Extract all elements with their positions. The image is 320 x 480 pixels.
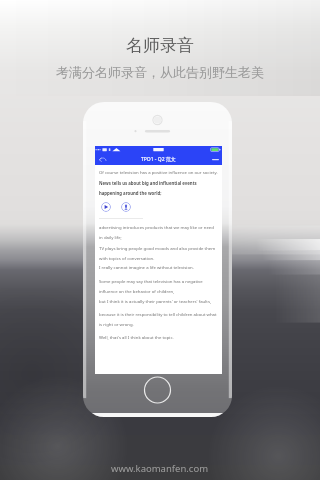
staticText: 名师录音 [126,35,194,56]
button[interactable]: Back [95,153,109,165]
staticText: advertising introduces products that we … [99,224,218,240]
staticText: Of course television has a positive infl… [99,169,218,175]
staticText: TV plays bring people good moods and als… [99,245,218,261]
button[interactable]: More options [209,153,222,165]
staticText: because it is their responsibility to te… [99,311,218,327]
button[interactable]: Play recording [101,202,111,212]
button[interactable]: Record [121,202,131,212]
staticText: News tells us about big and influential … [99,180,218,196]
staticText: Some people may say that television has … [99,278,218,294]
staticText: I really cannot imagine a life without t… [99,264,194,270]
staticText: Well, that's all I think about the topic… [99,334,174,340]
staticText: TPO1 - Q2 范文 [141,156,176,163]
staticText: www.kaomanfen.com [111,462,209,475]
staticText: but I think it is actually their parents… [99,298,212,304]
staticText: 考满分名师录音，从此告别野生老美 [56,64,264,80]
